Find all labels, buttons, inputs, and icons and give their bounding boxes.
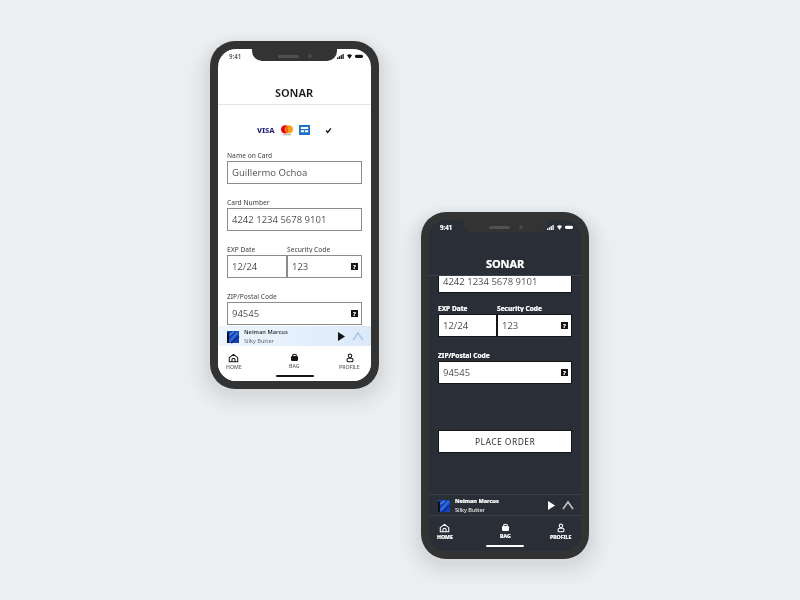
button[interactable]: 12/24 — [438, 314, 497, 337]
button[interactable]: HOME — [218, 354, 256, 370]
staticText: 123 — [292, 260, 309, 273]
staticText: ? — [563, 369, 566, 376]
staticText: ZIP/Postal Code — [227, 292, 277, 300]
staticText: 4242 1234 5678 9101 — [443, 275, 538, 288]
staticText: ? — [353, 263, 356, 270]
staticText: BAG — [289, 362, 300, 369]
button[interactable]: Play — [545, 499, 558, 512]
button[interactable]: 12/24 — [227, 255, 287, 278]
button[interactable]: Help — [561, 369, 568, 376]
button[interactable]: BAG — [272, 354, 317, 369]
staticText: Security Code — [287, 245, 331, 253]
button[interactable]: PLACE ORDER — [438, 430, 572, 453]
button[interactable]: Play — [335, 330, 348, 343]
button[interactable]: Neiman Marcus — [218, 326, 371, 346]
button[interactable]: 94545 — [438, 361, 572, 384]
button[interactable]: 123 — [497, 314, 572, 337]
staticText: Guillermo Ochoa — [232, 166, 308, 179]
staticText: Card Number — [227, 198, 270, 206]
staticText: ? — [353, 310, 356, 317]
staticText: PROFILE — [339, 363, 360, 370]
staticText: EXP Date — [227, 245, 256, 253]
button[interactable]: Guillermo Ochoa — [227, 161, 362, 184]
button[interactable]: 94545 — [227, 302, 362, 325]
staticText: Silky Butter — [244, 337, 274, 345]
staticText: Name on Card — [227, 151, 273, 159]
button[interactable]: 4242 1234 5678 9101 — [227, 208, 362, 231]
staticText: 94545 — [232, 307, 260, 320]
staticText: BAG — [500, 532, 511, 539]
staticText: EXP Date — [438, 304, 468, 312]
button[interactable]: Visa — [256, 123, 275, 137]
staticText: Neiman Marcus — [455, 497, 499, 505]
staticText: ZIP/Postal Code — [438, 351, 490, 359]
staticText: VISA — [257, 125, 275, 135]
button[interactable]: Expand player — [561, 499, 574, 512]
button[interactable]: Help — [351, 310, 358, 317]
staticText: SONAR — [275, 85, 314, 99]
staticText: 12/24 — [232, 260, 258, 273]
button[interactable]: Help — [561, 322, 568, 329]
button[interactable]: 123 — [287, 255, 362, 278]
button[interactable]: Mastercard — [278, 123, 295, 137]
staticText: Neiman Marcus — [244, 328, 288, 336]
staticText: ? — [563, 322, 566, 329]
button[interactable]: Card accepted — [322, 123, 335, 137]
button[interactable]: American Express — [297, 123, 311, 137]
staticText: 9:41 — [440, 223, 453, 231]
button[interactable]: Expand player — [351, 330, 364, 343]
staticText: 9:41 — [229, 52, 242, 60]
staticText: 123 — [502, 319, 519, 332]
staticText: Security Code — [497, 304, 542, 312]
staticText: 94545 — [443, 366, 471, 379]
button[interactable]: PROFILE — [327, 354, 371, 370]
staticText: 4242 1234 5678 9101 — [232, 213, 327, 226]
staticText: HOME — [226, 363, 242, 370]
button[interactable]: Neiman Marcus — [429, 495, 581, 515]
staticText: HOME — [437, 533, 453, 540]
staticText: 12/24 — [443, 319, 469, 332]
button[interactable]: Help — [351, 263, 358, 270]
staticText: Silky Butter — [455, 506, 485, 514]
staticText: PROFILE — [550, 533, 572, 540]
button[interactable]: PROFILE — [538, 524, 581, 540]
button[interactable]: HOME — [429, 524, 467, 540]
staticText: SONAR — [486, 256, 525, 270]
button[interactable]: 4242 1234 5678 9101 — [438, 270, 572, 293]
staticText: PLACE ORDER — [475, 436, 536, 448]
button[interactable]: BAG — [483, 524, 528, 539]
